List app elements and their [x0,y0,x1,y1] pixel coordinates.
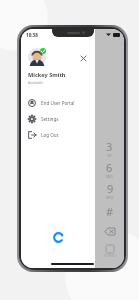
button[interactable]: End User Portal [21,95,95,111]
button[interactable]: 6 [95,159,124,180]
staticText: Mickey Smith [28,71,66,79]
staticText: # [106,204,114,219]
staticText: MNO [106,175,113,179]
button[interactable]: Log Out [21,127,95,143]
button[interactable]: # [95,201,124,222]
staticText: 9 [107,181,114,196]
button[interactable]: 3 [95,138,124,159]
button[interactable]: Keypad [95,240,124,262]
button[interactable]: 9 [95,180,124,201]
staticText: DEF [107,154,113,158]
staticText: 6 [106,160,113,175]
staticText: Settings [41,116,59,122]
staticText: Log Out [41,132,59,138]
button[interactable]: Backspace [95,222,124,240]
staticText: End User Portal [41,100,75,106]
staticText: WXYZ [106,196,114,200]
button[interactable]: Close [78,53,89,64]
staticText: Available [28,80,44,85]
staticText: 10:38 [26,32,38,38]
button[interactable]: Settings [21,111,95,127]
staticText: KEYPAD [104,254,116,258]
staticText: 3 [106,139,113,154]
